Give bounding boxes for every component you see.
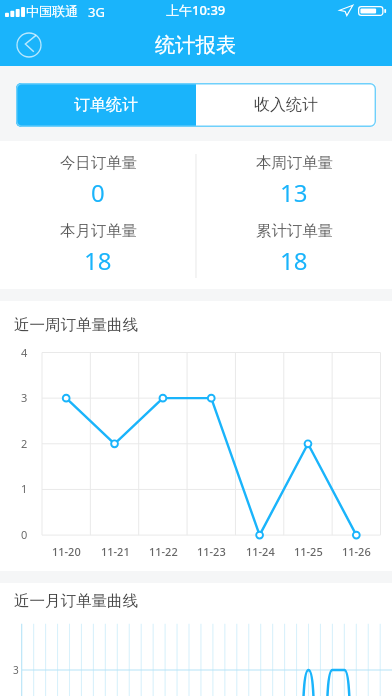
staticText: 收入统计 [254,95,318,115]
staticText: 近一月订单量曲线 [14,591,138,611]
staticText: 上午10:39 [166,1,226,19]
staticText: 近一周订单量曲线 [14,315,138,335]
staticText: 4 [21,345,28,360]
staticText: 18 [84,244,112,277]
staticText: 13 [280,176,308,209]
button[interactable]: Back [8,24,49,65]
staticText: 累计订单量 [256,221,333,240]
staticText: 1 [21,481,28,496]
staticText: 2 [21,436,28,451]
staticText: 本月订单量 [60,221,137,240]
staticText: 统计报表 [155,32,237,58]
staticText: 本周订单量 [256,153,333,172]
staticText: 11-24 [246,544,275,559]
staticText: 11-26 [342,544,371,559]
button[interactable]: 订单统计 [16,83,196,127]
staticText: 3G [88,3,105,21]
staticText: 中国联通 [26,3,78,19]
staticText: 11-23 [197,544,226,559]
staticText: 11-20 [52,544,81,559]
staticText: 0 [21,527,28,542]
staticText: 今日订单量 [60,153,137,172]
button[interactable]: 收入统计 [196,83,376,127]
staticText: 订单统计 [74,95,138,115]
staticText: 18 [280,244,308,277]
staticText: 11-22 [149,544,178,559]
staticText: 11-25 [294,544,323,559]
staticText: 3 [21,390,28,405]
staticText: 11-21 [101,544,130,559]
staticText: 3 [13,663,19,677]
staticText: 0 [91,176,105,209]
